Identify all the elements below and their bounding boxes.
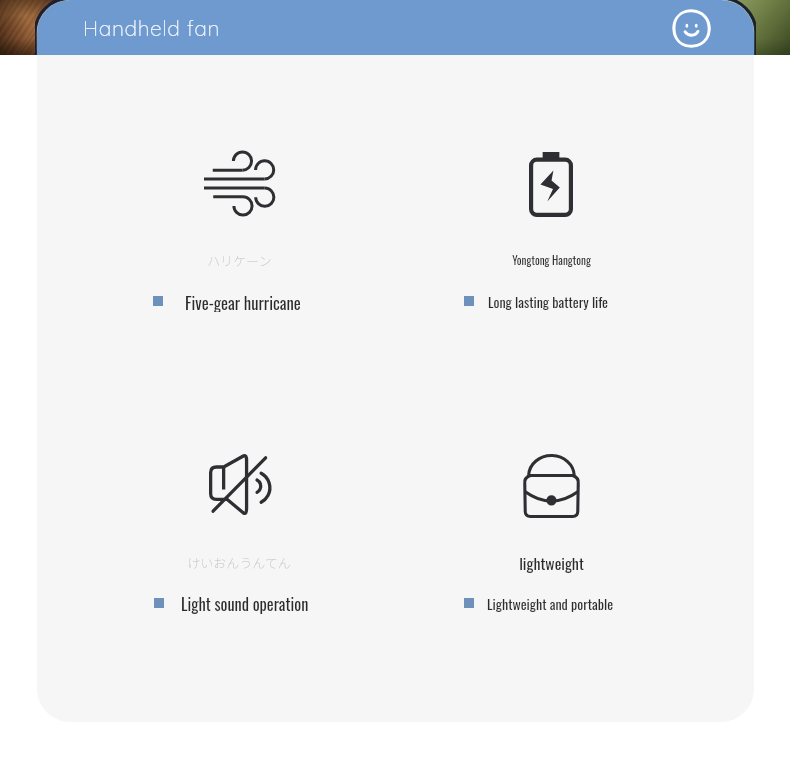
staticText: Handheld fan — [83, 15, 221, 41]
button[interactable]: lightweight — [395, 402, 707, 632]
staticText: Lightweight and portable — [487, 593, 614, 614]
button[interactable]: Smile — [672, 9, 711, 48]
staticText: Yongtong Hangtong — [512, 252, 591, 269]
button[interactable]: けいおんうんてん — [83, 402, 395, 632]
staticText: ハリケーン — [207, 251, 272, 270]
staticText: Five-gear hurricane — [185, 290, 301, 312]
button[interactable]: ハリケーン — [83, 100, 395, 330]
staticText: lightweight — [519, 551, 584, 573]
staticText: Light sound operation — [181, 592, 309, 614]
button[interactable]: Yongtong Hangtong — [395, 100, 707, 330]
staticText: けいおんうんてん — [187, 553, 291, 572]
staticText: Long lasting battery life — [488, 291, 608, 312]
